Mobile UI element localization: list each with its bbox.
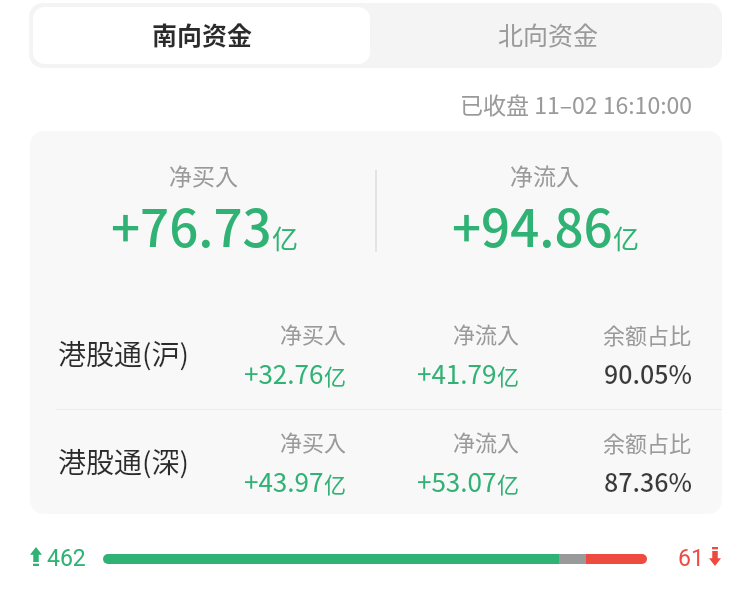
staticText: 余额占比 [603, 318, 692, 350]
staticText: 90.05% [604, 355, 692, 391]
button[interactable]: 港股通(沪) [30, 297, 722, 409]
staticText: 净流入 [453, 317, 520, 349]
staticText: 87.36% [604, 463, 692, 499]
staticText: +41.79 [417, 354, 497, 392]
staticText: 南向资金 [152, 16, 253, 52]
staticText: 亿 [272, 219, 299, 257]
staticText: 净买入 [280, 425, 347, 457]
staticText: +32.76 [244, 354, 324, 392]
staticText: 亿 [324, 359, 347, 391]
other: Declining stocks [709, 547, 721, 566]
staticText: +53.07 [417, 462, 497, 500]
staticText: 余额占比 [603, 426, 692, 458]
button[interactable]: 北向资金 [370, 7, 718, 64]
staticText: 亿 [324, 467, 347, 499]
staticText: 港股通(深) [58, 441, 189, 482]
staticText: 亿 [613, 219, 640, 257]
other: Advancing stocks [30, 547, 42, 566]
staticText: +94.86 [452, 188, 613, 262]
staticText: 净流入 [510, 158, 579, 191]
staticText: 港股通(沪) [58, 333, 189, 374]
staticText: 462 [47, 545, 86, 572]
staticText: 净买入 [280, 317, 347, 349]
staticText: 净流入 [453, 425, 520, 457]
button[interactable]: 南向资金 [33, 7, 370, 64]
staticText: 已收盘 11–02 16:10:00 [460, 87, 693, 120]
staticText: +76.73 [111, 188, 272, 262]
staticText: +43.97 [244, 462, 324, 500]
button[interactable]: 净买入 [30, 131, 376, 297]
staticText: 净买入 [169, 158, 238, 191]
button[interactable]: 净流入 [376, 131, 722, 297]
button[interactable]: 港股通(深) [30, 410, 722, 514]
staticText: 61 [678, 545, 704, 572]
staticText: 亿 [497, 359, 520, 391]
staticText: 亿 [497, 467, 520, 499]
staticText: 北向资金 [498, 16, 599, 52]
